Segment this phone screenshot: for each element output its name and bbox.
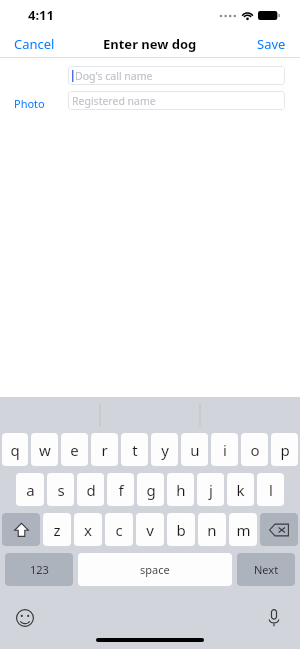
button[interactable]: v bbox=[136, 513, 164, 546]
button[interactable]: r bbox=[91, 433, 118, 466]
button[interactable]: space bbox=[78, 553, 232, 586]
button[interactable]: p bbox=[271, 433, 298, 466]
staticText: k bbox=[236, 480, 245, 500]
button[interactable]: u bbox=[181, 433, 208, 466]
button[interactable]: b bbox=[167, 513, 195, 546]
button[interactable]: e bbox=[61, 433, 88, 466]
button[interactable]: Emoji bbox=[10, 603, 40, 633]
button[interactable]: z bbox=[43, 513, 71, 546]
staticText: u bbox=[190, 440, 200, 460]
button[interactable]: Dog's call name bbox=[68, 66, 285, 85]
button[interactable]: c bbox=[105, 513, 133, 546]
button[interactable]: w bbox=[31, 433, 58, 466]
button[interactable]: m bbox=[229, 513, 257, 546]
button[interactable]: Dictation bbox=[262, 603, 286, 633]
staticText: o bbox=[250, 440, 260, 460]
staticText: e bbox=[70, 440, 79, 460]
staticText: b bbox=[176, 520, 186, 540]
button[interactable]: Cancel bbox=[0, 31, 69, 57]
button[interactable]: Next bbox=[237, 553, 295, 586]
button[interactable]: l bbox=[257, 473, 284, 506]
button[interactable]: Save bbox=[243, 31, 300, 57]
staticText: Save bbox=[257, 35, 286, 53]
button[interactable]: t bbox=[121, 433, 148, 466]
button[interactable]: i bbox=[211, 433, 238, 466]
button[interactable]: g bbox=[137, 473, 164, 506]
button[interactable]: k bbox=[227, 473, 254, 506]
staticText: w bbox=[39, 440, 51, 460]
staticText: Enter new dog bbox=[103, 35, 197, 53]
staticText: a bbox=[26, 480, 35, 500]
button[interactable]: s bbox=[47, 473, 74, 506]
button[interactable]: n bbox=[198, 513, 226, 546]
staticText: g bbox=[146, 480, 156, 500]
button[interactable]: j bbox=[197, 473, 224, 506]
staticText: q bbox=[10, 440, 20, 460]
staticText: v bbox=[146, 520, 154, 540]
staticText: Next bbox=[254, 562, 279, 577]
staticText: r bbox=[101, 440, 108, 460]
staticText: f bbox=[118, 480, 124, 500]
button[interactable]: d bbox=[77, 473, 104, 506]
staticText: space bbox=[140, 562, 170, 577]
staticText: d bbox=[86, 480, 96, 500]
staticText: x bbox=[84, 520, 92, 540]
staticText: y bbox=[161, 440, 169, 460]
staticText: l bbox=[269, 480, 273, 500]
button[interactable]: f bbox=[107, 473, 134, 506]
button[interactable]: Photo bbox=[8, 93, 51, 114]
staticText: Cancel bbox=[14, 35, 55, 53]
staticText: j bbox=[209, 480, 213, 500]
button[interactable]: Backspace bbox=[260, 513, 298, 546]
button[interactable]: y bbox=[151, 433, 178, 466]
button[interactable]: 123 bbox=[5, 553, 73, 586]
staticText: c bbox=[115, 520, 123, 540]
staticText: Photo bbox=[14, 96, 45, 111]
button[interactable]: q bbox=[2, 433, 28, 466]
staticText: p bbox=[280, 440, 290, 460]
staticText: 4:11 bbox=[28, 6, 54, 24]
staticText: 123 bbox=[30, 562, 49, 577]
staticText: i bbox=[223, 440, 227, 460]
staticText: m bbox=[236, 520, 251, 540]
staticText: s bbox=[57, 480, 65, 500]
button[interactable]: o bbox=[241, 433, 268, 466]
button[interactable]: Shift bbox=[2, 513, 40, 546]
staticText: t bbox=[132, 440, 138, 460]
staticText: Registered name bbox=[72, 94, 156, 108]
staticText: z bbox=[53, 520, 61, 540]
button[interactable]: h bbox=[167, 473, 194, 506]
staticText: Dog's call name bbox=[75, 69, 153, 83]
button[interactable]: a bbox=[16, 473, 44, 506]
button[interactable]: Registered name bbox=[68, 91, 285, 110]
button[interactable]: x bbox=[74, 513, 102, 546]
staticText: h bbox=[176, 480, 186, 500]
staticText: n bbox=[207, 520, 217, 540]
